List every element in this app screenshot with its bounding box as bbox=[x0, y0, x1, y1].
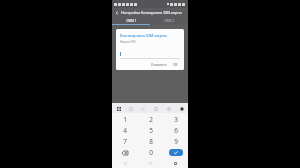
button[interactable]: 8 bbox=[138, 136, 163, 147]
staticText: СИМ 1 bbox=[126, 19, 137, 23]
button[interactable]: СИМ 1 bbox=[112, 17, 150, 24]
staticText: Введите PIN bbox=[120, 40, 136, 44]
staticText: 8 bbox=[149, 137, 153, 146]
button[interactable]: 4 bbox=[112, 125, 138, 136]
button[interactable]: Home bbox=[138, 158, 163, 168]
button[interactable]: СИМ 2 bbox=[150, 17, 188, 24]
button[interactable]: Keyboard layouts bbox=[115, 105, 122, 112]
button[interactable]: 3 bbox=[163, 114, 188, 125]
button[interactable]: Enter bbox=[169, 149, 183, 156]
staticText: Отменить bbox=[151, 63, 167, 67]
button[interactable]: More options bbox=[178, 105, 185, 112]
button[interactable]: Stickers bbox=[127, 105, 134, 112]
staticText: 7 bbox=[123, 137, 127, 146]
button[interactable]: 6 bbox=[163, 125, 188, 136]
button[interactable]: 0 bbox=[138, 147, 163, 158]
button[interactable]: Clipboard bbox=[152, 105, 159, 112]
staticText: OK bbox=[173, 63, 178, 67]
button[interactable]: 1 bbox=[112, 114, 138, 125]
staticText: 6 bbox=[174, 126, 178, 135]
staticText: 0 bbox=[149, 148, 153, 157]
button[interactable]: Back bbox=[112, 8, 121, 17]
staticText: 1 bbox=[123, 115, 127, 124]
button[interactable]: Recents bbox=[163, 158, 188, 168]
staticText: Блокировка SIM-карты bbox=[120, 33, 168, 39]
staticText: СИМ 2 bbox=[164, 19, 174, 23]
button[interactable]: 5 bbox=[138, 125, 163, 136]
staticText: 9 bbox=[174, 137, 178, 146]
button[interactable]: 7 bbox=[112, 136, 138, 147]
staticText: 5 bbox=[149, 126, 153, 135]
button[interactable]: 2 bbox=[138, 114, 163, 125]
staticText: 3 bbox=[174, 115, 178, 124]
staticText: 4 bbox=[123, 126, 127, 135]
staticText: Настройка блокировки SIM-карты bbox=[121, 10, 182, 15]
button[interactable]: Minimize bbox=[139, 105, 146, 112]
button[interactable]: Backspace bbox=[112, 147, 138, 158]
button[interactable]: Back bbox=[112, 158, 138, 168]
button[interactable]: 9 bbox=[163, 136, 188, 147]
button[interactable]: Settings bbox=[165, 105, 172, 112]
staticText: 2 bbox=[149, 115, 153, 124]
button[interactable]: OK bbox=[171, 62, 180, 68]
button[interactable]: Отменить bbox=[149, 62, 169, 68]
